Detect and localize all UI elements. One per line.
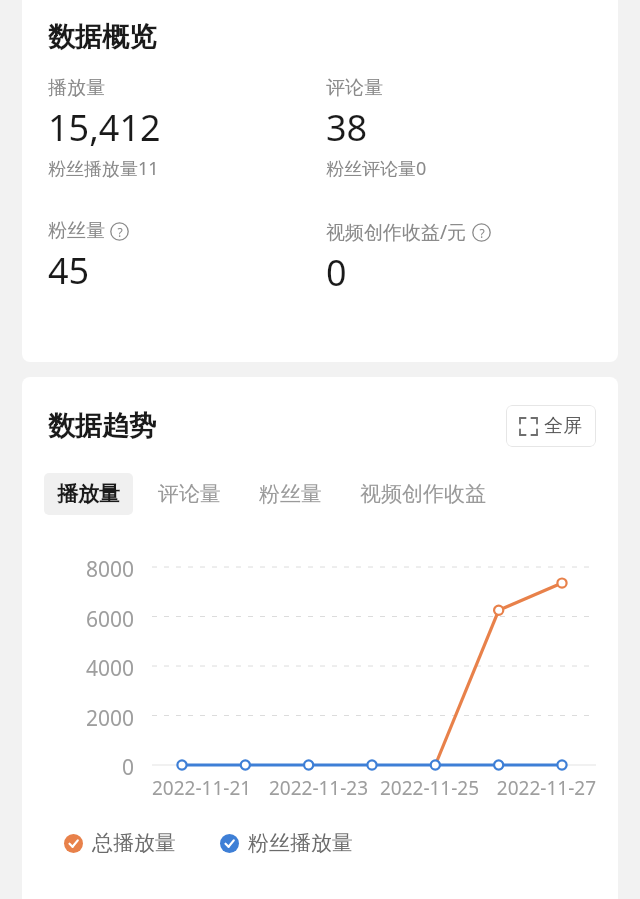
- button[interactable]: 播放量: [44, 473, 133, 515]
- staticText: 0: [326, 248, 347, 297]
- staticText: 评论量: [326, 76, 383, 100]
- button[interactable]: 帮助: [472, 223, 491, 242]
- staticText: 38: [326, 103, 368, 152]
- staticText: ?: [479, 225, 485, 241]
- staticText: 全屏: [544, 414, 582, 438]
- button[interactable]: 评论量: [145, 473, 234, 515]
- staticText: 粉丝评论量0: [326, 156, 427, 181]
- staticText: 4000: [22, 654, 134, 683]
- staticText: 数据概览: [48, 20, 156, 54]
- staticText: 2022-11-23: [263, 775, 374, 801]
- staticText: 粉丝量: [48, 219, 105, 243]
- staticText: 15,412: [48, 103, 161, 152]
- staticText: 播放量: [57, 481, 120, 507]
- button[interactable]: 总播放量: [64, 830, 176, 856]
- staticText: 2000: [22, 704, 134, 733]
- button[interactable]: 粉丝播放量: [220, 830, 353, 856]
- staticText: 2022-11-25: [374, 775, 485, 801]
- staticText: 6000: [22, 605, 134, 634]
- staticText: 45: [48, 246, 90, 295]
- staticText: 2022-11-21: [152, 775, 263, 801]
- staticText: 视频创作收益: [360, 481, 486, 507]
- staticText: 0: [22, 753, 134, 782]
- staticText: 播放量: [48, 76, 105, 100]
- button[interactable]: 粉丝量: [246, 473, 335, 515]
- staticText: 评论量: [158, 481, 221, 507]
- staticText: 2022-11-27: [485, 775, 596, 801]
- button[interactable]: 全屏: [506, 405, 596, 447]
- staticText: 总播放量: [92, 830, 176, 856]
- staticText: 8000: [22, 555, 134, 584]
- button[interactable]: 视频创作收益: [347, 473, 499, 515]
- staticText: 粉丝播放量11: [48, 156, 159, 181]
- staticText: 粉丝量: [259, 481, 322, 507]
- button[interactable]: 帮助: [110, 222, 129, 241]
- staticText: ?: [117, 224, 123, 240]
- staticText: 粉丝播放量: [248, 830, 353, 856]
- staticText: 视频创作收益/元: [326, 219, 467, 245]
- staticText: 数据趋势: [48, 409, 156, 443]
